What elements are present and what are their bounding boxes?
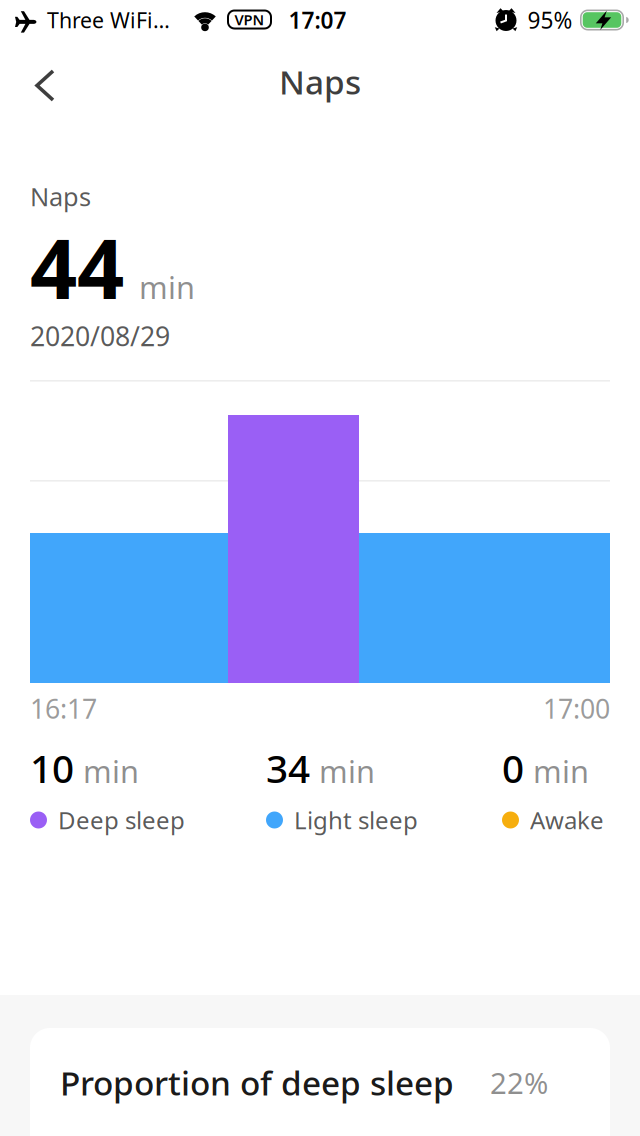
staticText: 34 (266, 742, 310, 794)
staticText: VPN (234, 10, 264, 29)
staticText: min (139, 267, 195, 307)
staticText: 22% (490, 1063, 548, 1102)
staticText: Awake (530, 804, 604, 836)
staticText: 17:00 (543, 691, 610, 726)
staticText: 17:07 (288, 5, 346, 35)
staticText: Proportion of deep sleep (60, 1060, 454, 1105)
staticText: 10 (30, 742, 74, 794)
staticText: 44 (30, 212, 124, 322)
staticText: Naps (279, 59, 361, 104)
staticText: 95% (527, 5, 572, 35)
staticText: min (83, 751, 139, 791)
button[interactable] (0, 66, 72, 105)
staticText: Three WiFi… (47, 6, 170, 34)
staticText: 2020/08/29 (30, 318, 170, 354)
staticText: 16:17 (30, 691, 97, 726)
staticText: Light sleep (294, 804, 418, 836)
staticText: min (533, 751, 589, 791)
button[interactable]: Proportion of deep sleep (30, 1028, 610, 1136)
staticText: Naps (30, 180, 91, 213)
staticText: Deep sleep (58, 804, 185, 836)
staticText: min (319, 751, 375, 791)
staticText: 0 (502, 742, 524, 794)
